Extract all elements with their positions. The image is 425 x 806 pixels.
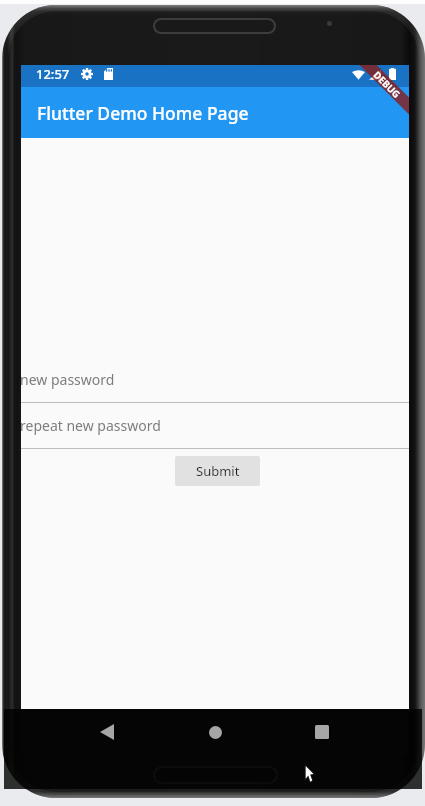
button[interactable]: Home [187, 710, 243, 754]
staticText: Flutter Demo Home Page [37, 101, 249, 125]
button[interactable]: Back [79, 710, 135, 754]
button[interactable]: Recent apps [294, 710, 350, 754]
staticText: repeat new password [21, 416, 161, 435]
staticText: DEBUG [371, 68, 403, 100]
staticText: new password [21, 370, 115, 389]
button[interactable]: repeat new password [21, 403, 409, 448]
staticText: 12:57 [36, 65, 70, 83]
button[interactable]: Submit [175, 456, 260, 486]
staticText: Submit [196, 462, 240, 480]
button[interactable]: new password [21, 357, 409, 402]
